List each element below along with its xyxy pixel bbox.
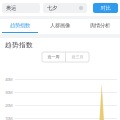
staticText: 奥运 — [6, 5, 16, 11]
button[interactable]: 对比 — [93, 3, 118, 13]
staticText: 对比 — [100, 5, 110, 11]
staticText: 40M — [5, 77, 13, 82]
staticText: 近三月 — [71, 54, 83, 59]
staticText: 人群画像 — [50, 22, 70, 29]
staticText: 七夕 — [47, 5, 57, 11]
staticText: 趋势指数 — [5, 41, 33, 49]
button[interactable]: 舆情分析 — [80, 19, 120, 34]
button[interactable]: 趋势指数 — [0, 19, 40, 34]
button[interactable]: 人群画像 — [40, 19, 80, 34]
staticText: 10M — [5, 116, 13, 120]
staticText: 趋势指数 — [10, 22, 30, 29]
button[interactable]: 近一周 — [42, 52, 65, 62]
button[interactable]: 近三月 — [66, 52, 89, 62]
staticText: 30M — [5, 90, 13, 95]
staticText: 舆情分析 — [90, 22, 110, 29]
staticText: 近一周 — [47, 54, 59, 59]
staticText: 20M — [5, 103, 13, 108]
button[interactable]: 七夕 — [43, 3, 87, 13]
button[interactable]: 奥运 — [2, 3, 40, 13]
